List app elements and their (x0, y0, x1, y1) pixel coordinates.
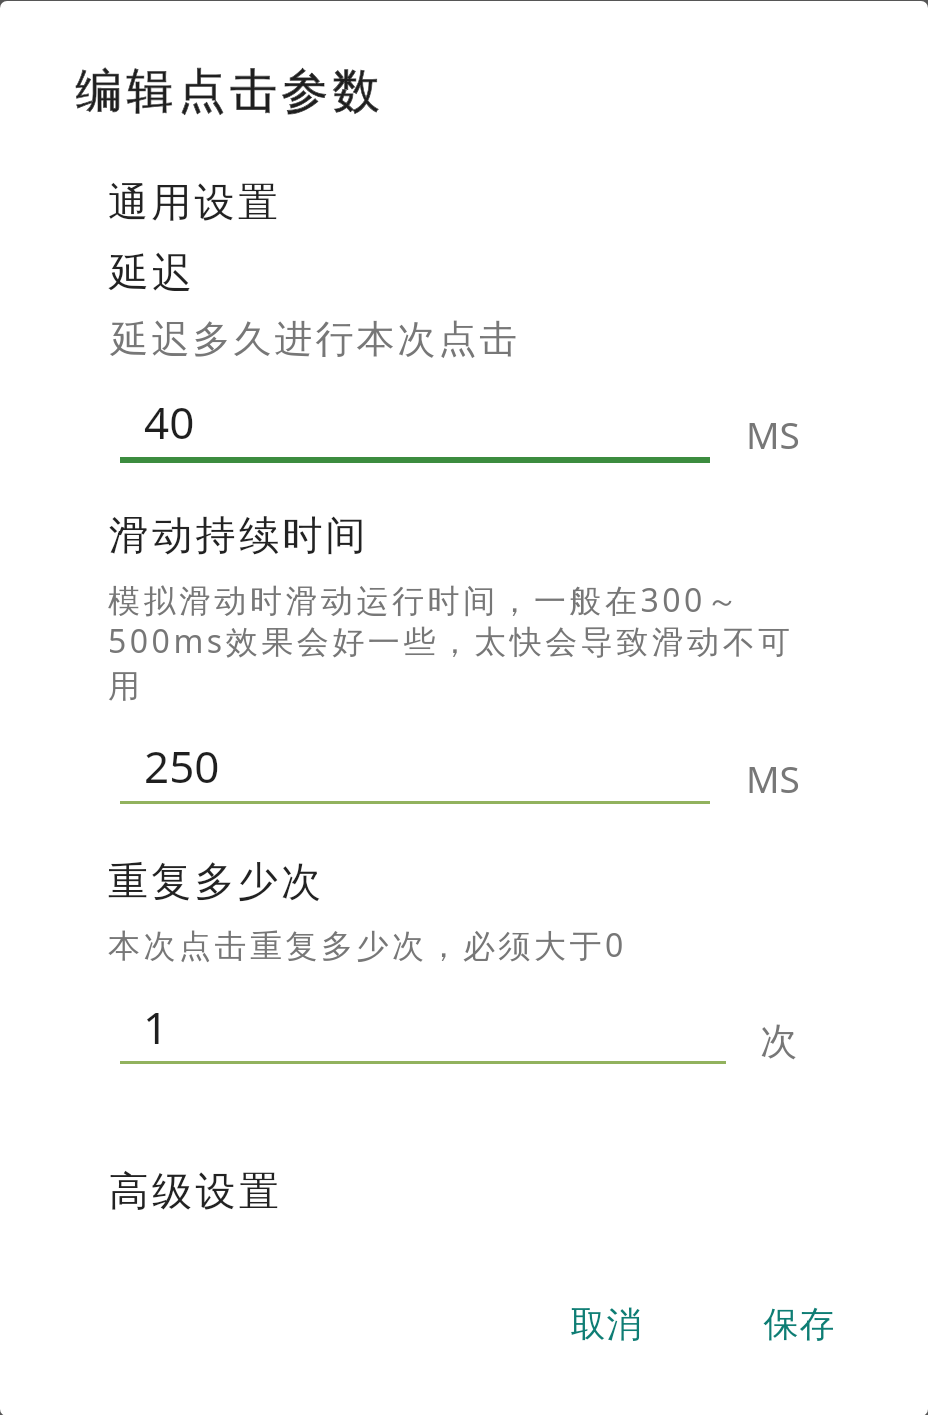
button[interactable]: 滑动持续毫秒数 (108, 731, 820, 810)
staticText: MS (746, 753, 800, 803)
button[interactable]: 重复次数 (108, 992, 820, 1070)
staticText: 通用设置 (108, 177, 282, 227)
button[interactable]: 保存 (735, 1284, 863, 1364)
button[interactable]: 取消 (542, 1284, 670, 1364)
staticText: 延迟 (109, 247, 196, 297)
staticText: 保存 (763, 1302, 835, 1346)
staticText: 取消 (570, 1302, 642, 1346)
staticText: 次 (760, 1018, 797, 1065)
staticText: 高级设置 (109, 1166, 283, 1216)
button[interactable]: 高级设置 (88, 1141, 388, 1237)
staticText: 用 (108, 666, 144, 706)
staticText: 编辑点击参数 (73, 62, 382, 121)
button[interactable]: 延迟毫秒数 (108, 387, 820, 469)
staticText: 40 (144, 392, 195, 452)
staticText: 1 (143, 997, 169, 1057)
staticText: 模拟滑动时滑动运行时间，一般在300～ (108, 578, 742, 622)
staticText: 重复多少次 (108, 856, 325, 906)
staticText: 编辑点击参数 (73, 62, 382, 121)
staticText: MS (746, 409, 800, 459)
staticText: 滑动持续时间 (109, 510, 369, 560)
staticText: 500ms效果会好一些，太快会导致滑动不可 (108, 619, 794, 663)
staticText: 本次点击重复多少次，必须大于0 (108, 923, 627, 967)
staticText: 250 (144, 736, 220, 796)
staticText: 延迟多久进行本次点击 (109, 315, 519, 363)
